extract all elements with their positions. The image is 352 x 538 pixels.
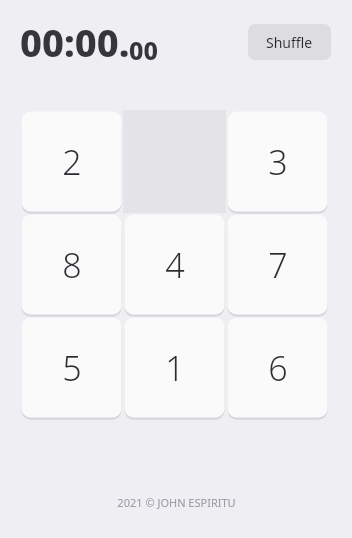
button[interactable]: 7 xyxy=(226,213,329,316)
staticText: 3 xyxy=(268,139,288,185)
staticText: 00 xyxy=(129,33,158,67)
button[interactable]: 6 xyxy=(226,316,329,419)
button[interactable]: 5 xyxy=(20,316,123,419)
button[interactable]: Shuffle xyxy=(248,24,331,60)
staticText: 00:00. xyxy=(20,16,130,68)
button[interactable]: 2 xyxy=(20,110,123,213)
button[interactable]: 3 xyxy=(226,110,329,213)
staticText: 4 xyxy=(165,242,185,288)
staticText: 1 xyxy=(165,345,185,391)
staticText: 8 xyxy=(62,242,82,288)
button[interactable]: 4 xyxy=(123,213,226,316)
staticText: 2021 © JOHN ESPIRITU xyxy=(117,495,236,510)
staticText: 7 xyxy=(268,242,288,288)
staticText: Shuffle xyxy=(266,33,313,52)
button[interactable]: 8 xyxy=(20,213,123,316)
staticText: 2 xyxy=(62,139,82,185)
staticText: 6 xyxy=(268,345,288,391)
staticText: 5 xyxy=(62,345,82,391)
button[interactable]: 1 xyxy=(123,316,226,419)
